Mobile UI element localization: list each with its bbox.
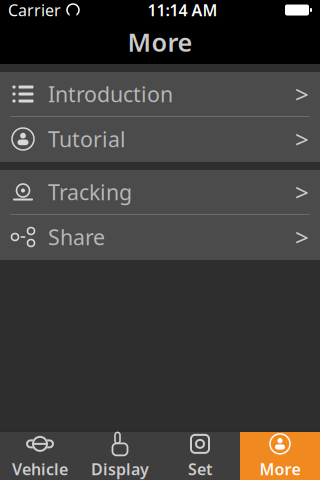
staticText: >	[295, 176, 309, 208]
button[interactable]: More	[240, 432, 320, 480]
staticText: Vehicle	[12, 458, 68, 480]
button[interactable]: Display	[80, 432, 160, 480]
staticText: Share	[48, 223, 105, 251]
button[interactable]: Introduction	[0, 72, 320, 117]
staticText: Set	[188, 458, 212, 480]
button[interactable]: Tutorial	[0, 117, 320, 162]
staticText: Tracking	[48, 178, 132, 206]
button[interactable]: Tracking	[0, 170, 320, 215]
staticText: Carrier	[8, 0, 61, 21]
staticText: >	[295, 78, 309, 110]
staticText: Display	[91, 458, 149, 480]
button[interactable]: Share	[0, 215, 320, 260]
staticText: 11:14 AM	[147, 0, 217, 21]
button[interactable]: Set	[160, 432, 240, 480]
staticText: >	[295, 123, 309, 155]
staticText: More	[259, 458, 300, 480]
button[interactable]: Vehicle	[0, 432, 80, 480]
staticText: Tutorial	[48, 125, 126, 153]
staticText: More	[127, 25, 192, 59]
staticText: Introduction	[48, 80, 173, 108]
staticText: >	[295, 221, 309, 253]
